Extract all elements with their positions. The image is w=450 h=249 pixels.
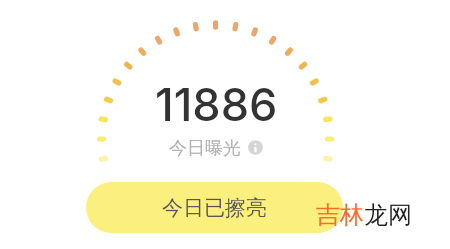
button[interactable]: 今日已擦亮 [86,182,343,233]
staticText: 11886 [155,77,278,131]
staticText: 吉林 [316,200,364,230]
other: Info [248,140,263,155]
staticText: 今日曝光 [169,137,241,160]
staticText: 龙网 [364,200,412,230]
staticText: 今日已擦亮 [162,195,267,221]
